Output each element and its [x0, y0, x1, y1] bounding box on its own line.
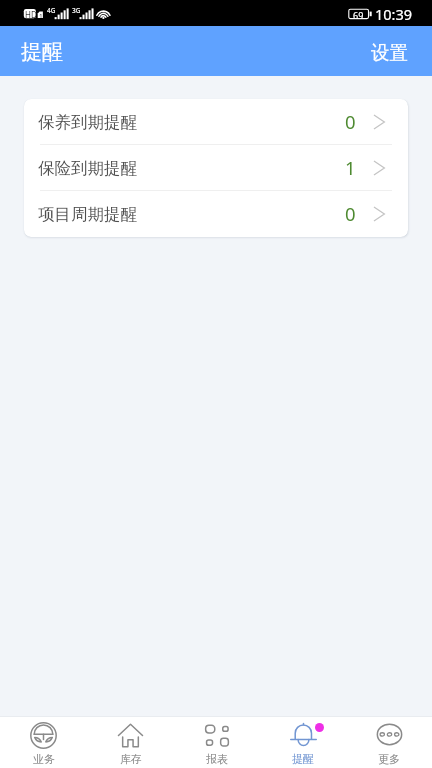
staticText: 4G [47, 6, 56, 15]
staticText: 报表 [206, 752, 228, 766]
staticText: 0 [345, 109, 356, 134]
button[interactable]: 提醒 [260, 717, 346, 768]
staticText: 提醒 [21, 39, 63, 65]
staticText: 10:39 [375, 4, 413, 24]
staticText: 1 [345, 155, 356, 180]
staticText: 保养到期提醒 [38, 112, 137, 133]
staticText: 保险到期提醒 [38, 158, 137, 179]
button[interactable]: 保险到期提醒 [24, 145, 408, 191]
staticText: 库存 [120, 752, 142, 766]
staticText: HD [25, 9, 37, 20]
staticText: 3G [72, 6, 81, 15]
staticText: 1 [39, 12, 43, 21]
button[interactable]: 更多 [346, 717, 432, 768]
staticText: 0 [345, 201, 356, 226]
staticText: 业务 [33, 752, 55, 766]
staticText: 更多 [378, 752, 400, 766]
staticText: 提醒 [292, 752, 314, 766]
button[interactable]: 报表 [174, 717, 260, 768]
button[interactable]: 库存 [87, 717, 174, 768]
staticText: 设置 [371, 41, 408, 64]
button[interactable]: 设置 [355, 29, 432, 73]
staticText: 项目周期提醒 [38, 204, 137, 225]
staticText: 69 [353, 9, 364, 21]
button[interactable]: 业务 [0, 717, 87, 768]
button[interactable]: 项目周期提醒 [24, 191, 408, 237]
button[interactable]: 保养到期提醒 [24, 99, 408, 145]
